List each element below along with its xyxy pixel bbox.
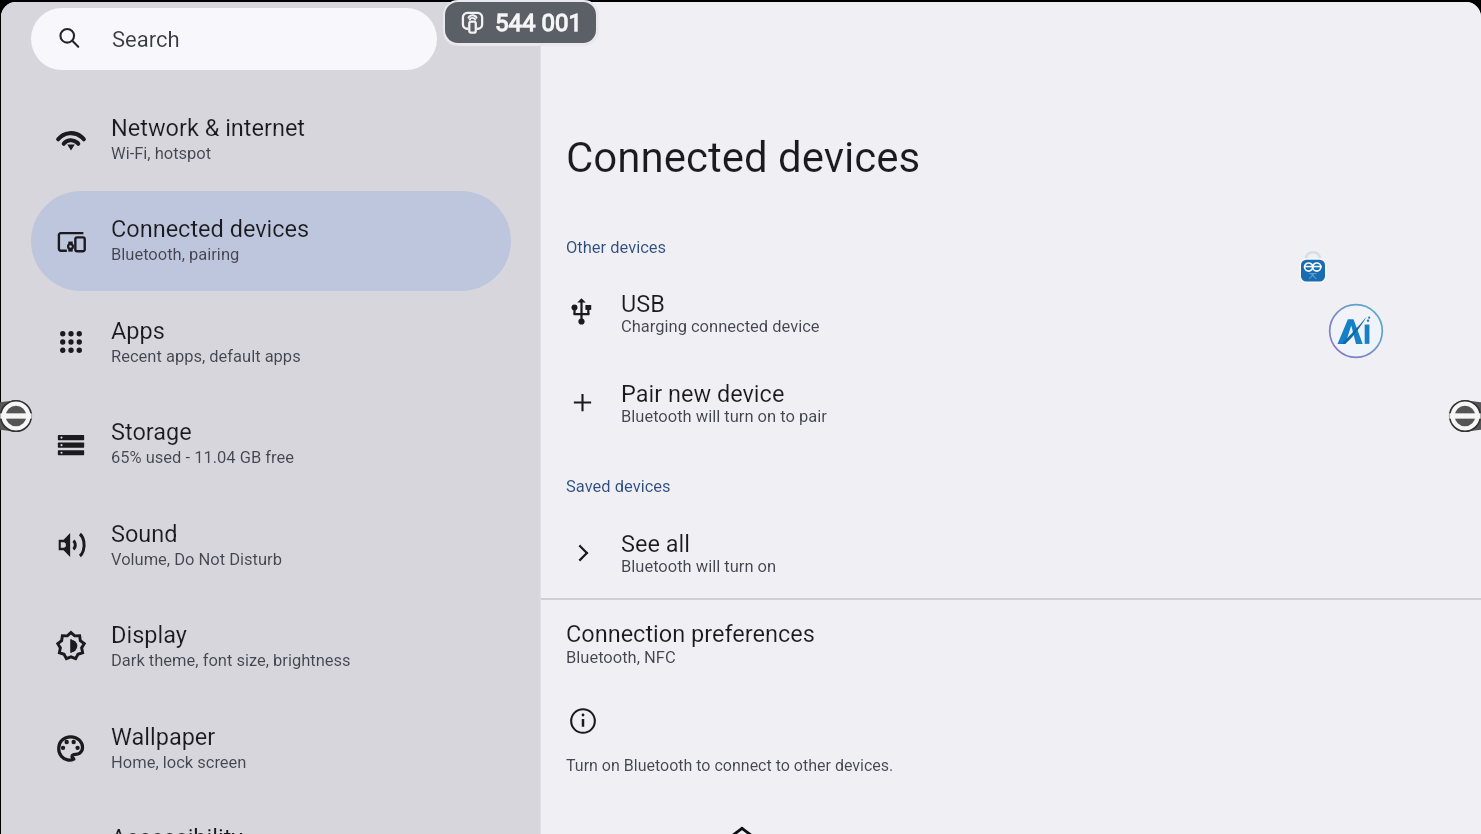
button[interactable]: Accessibility — [31, 800, 511, 834]
staticText: Recent apps, default apps — [111, 347, 301, 366]
button[interactable]: Sound — [31, 496, 511, 596]
button[interactable]: Wallpaper — [31, 699, 511, 799]
staticText: Connected devices — [111, 215, 310, 243]
button[interactable]: Network & internet — [31, 90, 511, 190]
staticText: Other devices — [566, 238, 667, 257]
staticText: USB — [621, 290, 665, 318]
button[interactable]: Storage — [31, 394, 511, 494]
button[interactable]: Display — [31, 597, 511, 697]
staticText: Dark theme, font size, brightness — [111, 651, 351, 670]
staticText: Search — [112, 27, 180, 53]
button[interactable]: Connected devices — [31, 191, 511, 291]
staticText: Wi-Fi, hotspot — [111, 144, 212, 163]
staticText: 544 001 — [495, 9, 582, 37]
button[interactable]: Search — [31, 8, 437, 70]
button[interactable]: AI assistant — [1328, 303, 1384, 359]
button[interactable]: Floating app shortcut — [1298, 255, 1328, 285]
staticText: Bluetooth, NFC — [566, 648, 676, 667]
staticText: Sound — [111, 520, 178, 548]
button[interactable]: Drag handle — [1448, 399, 1481, 433]
staticText: Home, lock screen — [111, 753, 247, 772]
staticText: Wallpaper — [111, 723, 216, 751]
staticText: Connected devices — [566, 133, 921, 182]
staticText: Charging connected device — [621, 317, 820, 336]
staticText: Saved devices — [566, 477, 671, 496]
staticText: Accessibility — [111, 824, 243, 834]
staticText: Storage — [111, 418, 192, 446]
button[interactable]: Drag handle — [0, 399, 33, 433]
staticText: Bluetooth, pairing — [111, 245, 240, 264]
button[interactable]: See all — [541, 511, 1481, 589]
staticText: Volume, Do Not Disturb — [111, 550, 282, 569]
staticText: Bluetooth will turn on to pair — [621, 407, 827, 426]
button[interactable]: Apps — [31, 293, 511, 393]
staticText: Network & internet — [111, 114, 306, 142]
button[interactable]: Pair new device — [541, 361, 1481, 439]
staticText: 65% used - 11.04 GB free — [111, 448, 294, 467]
button[interactable]: Screen cast identifier — [445, 2, 596, 43]
staticText: Connection preferences — [566, 620, 815, 648]
staticText: Pair new device — [621, 380, 785, 408]
staticText: Bluetooth will turn on — [621, 557, 777, 576]
staticText: See all — [621, 530, 690, 558]
staticText: Display — [111, 621, 187, 649]
button[interactable]: USB — [541, 271, 1481, 349]
staticText: Turn on Bluetooth to connect to other de… — [566, 756, 894, 775]
staticText: Apps — [111, 317, 165, 345]
